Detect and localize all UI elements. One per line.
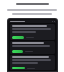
- button[interactable]: Primary action: [10, 41, 55, 54]
- button[interactable]: App bar: [9, 20, 56, 23]
- button[interactable]: Primary action: [10, 55, 55, 70]
- button[interactable]: Primary action: [12, 67, 25, 69]
- button[interactable]: Primary action: [12, 36, 24, 39]
- button[interactable]: Primary action: [12, 50, 23, 53]
- button[interactable]: Primary action: [10, 24, 55, 40]
